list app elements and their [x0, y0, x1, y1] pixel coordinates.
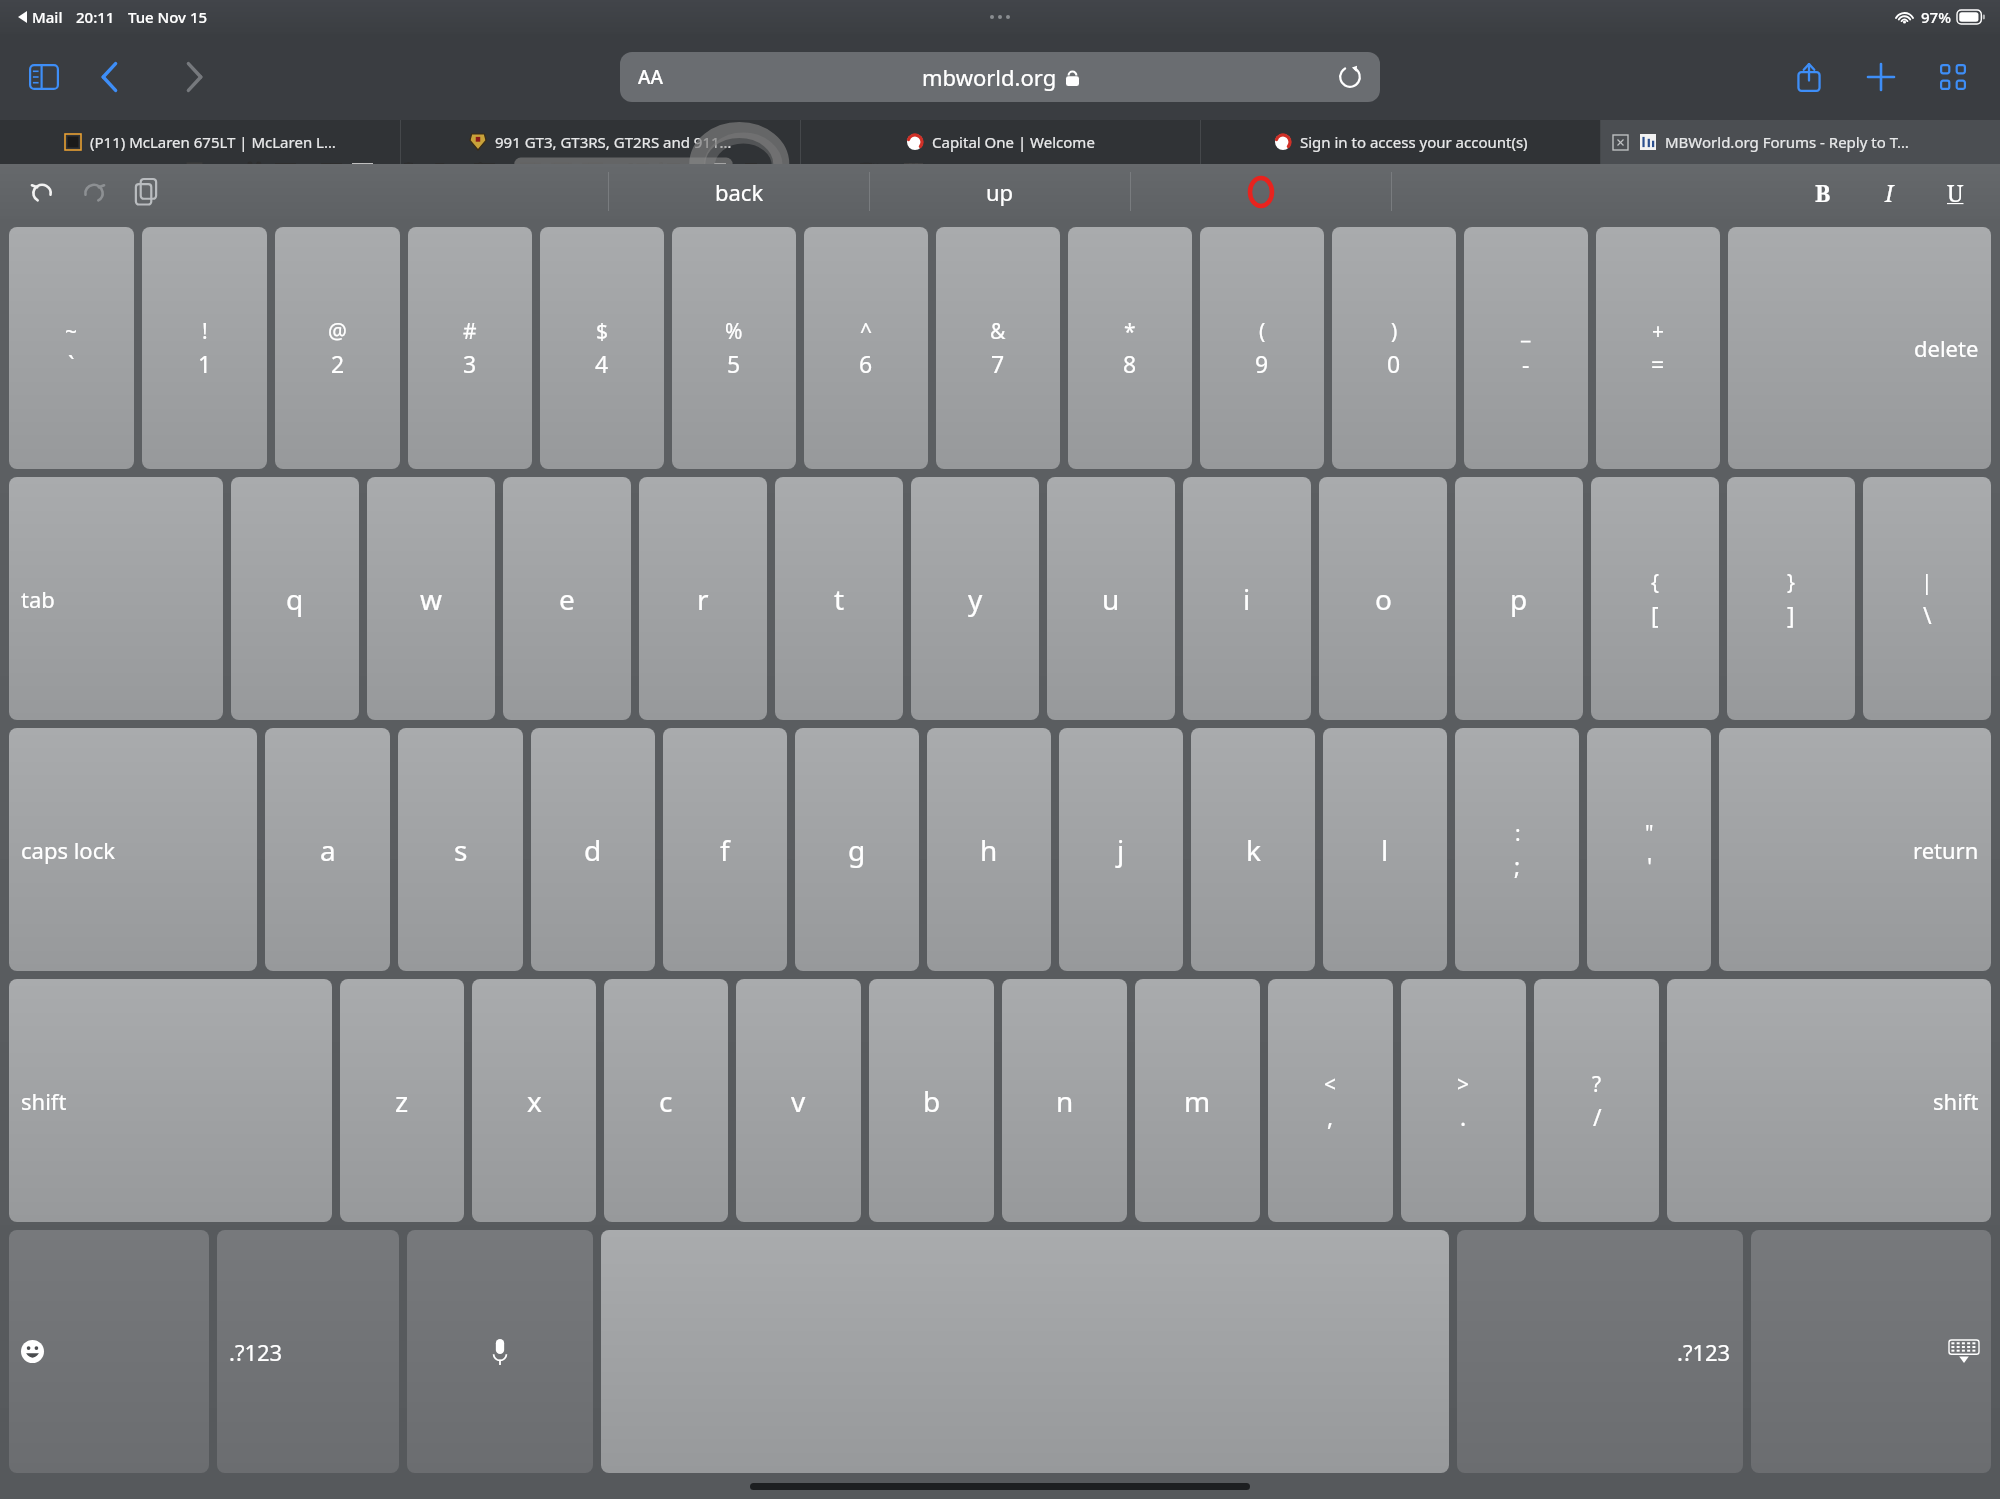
staticText: 5	[727, 348, 741, 379]
button[interactable]: Close tab	[1611, 133, 1629, 151]
button[interactable]: AA	[620, 52, 1380, 102]
button[interactable]: shift	[1667, 979, 1991, 1222]
button[interactable]: v	[736, 979, 861, 1222]
button[interactable]: q	[231, 477, 359, 720]
button[interactable]: }	[1727, 477, 1855, 720]
button[interactable]: y	[911, 477, 1039, 720]
staticText: (	[1259, 317, 1266, 346]
button[interactable]: Sign in to access your account(s)	[1201, 120, 1600, 164]
button[interactable]: |	[1863, 477, 1991, 720]
button[interactable]: c	[604, 979, 728, 1222]
button[interactable]: :	[1455, 728, 1579, 971]
button[interactable]: Show sidebar	[22, 55, 66, 99]
button[interactable]: e	[503, 477, 631, 720]
button[interactable]: tab	[9, 477, 223, 720]
button[interactable]: Marker	[1131, 172, 1391, 211]
button[interactable]: B	[1804, 173, 1842, 211]
staticText: v	[791, 1082, 806, 1120]
staticText: Capital One | Welcome	[932, 132, 1095, 152]
button[interactable]: Dictate	[407, 1230, 593, 1473]
button[interactable]: +	[1596, 227, 1720, 469]
button[interactable]: p	[1455, 477, 1583, 720]
button[interactable]: *	[1068, 227, 1192, 469]
button[interactable]: Redo	[74, 172, 114, 212]
button[interactable]: s	[398, 728, 523, 971]
button[interactable]: Show all tabs	[1930, 54, 1976, 100]
button[interactable]: $	[540, 227, 664, 469]
button[interactable]: caps lock	[9, 728, 257, 971]
button[interactable]: 991 GT3, GT3RS, GT2RS and 911…	[401, 120, 800, 164]
button[interactable]: I	[1870, 173, 1908, 211]
button[interactable]: Forward	[172, 55, 216, 99]
staticText: -	[1522, 348, 1530, 379]
button[interactable]: a	[265, 728, 390, 971]
button[interactable]: %	[672, 227, 796, 469]
button[interactable]: r	[639, 477, 767, 720]
button[interactable]: up	[870, 172, 1130, 211]
button[interactable]: ~	[9, 227, 134, 469]
button[interactable]: "	[1587, 728, 1711, 971]
button[interactable]: z	[340, 979, 464, 1222]
staticText: delete	[1914, 333, 1979, 363]
button[interactable]	[601, 1230, 1449, 1473]
button[interactable]: Close tab	[1601, 120, 2000, 164]
staticText: B	[1815, 177, 1831, 208]
staticText: r	[697, 580, 709, 618]
button[interactable]: U	[1936, 173, 1974, 211]
button[interactable]: b	[869, 979, 994, 1222]
staticText: "	[1645, 819, 1654, 848]
button[interactable]: j	[1059, 728, 1183, 971]
button[interactable]: m	[1135, 979, 1260, 1222]
button[interactable]: New tab	[1858, 54, 1904, 100]
button[interactable]: return	[1719, 728, 1991, 971]
button[interactable]: Back	[88, 55, 132, 99]
button[interactable]: l	[1323, 728, 1447, 971]
button[interactable]: x	[472, 979, 596, 1222]
staticText: :	[1515, 819, 1521, 848]
button[interactable]: Paste	[126, 172, 166, 212]
button[interactable]: h	[927, 728, 1051, 971]
staticText: tab	[21, 584, 55, 614]
button[interactable]: Share	[1786, 54, 1832, 100]
button[interactable]: delete	[1728, 227, 1991, 469]
button[interactable]: .?123	[217, 1230, 399, 1473]
staticText: n	[1056, 1082, 1074, 1120]
button[interactable]: _	[1464, 227, 1588, 469]
button[interactable]: {	[1591, 477, 1719, 720]
button[interactable]: t	[775, 477, 903, 720]
button[interactable]: Capital One | Welcome	[801, 120, 1200, 164]
button[interactable]: ^	[804, 227, 928, 469]
button[interactable]: Reload	[1334, 61, 1366, 93]
button[interactable]: o	[1319, 477, 1447, 720]
button[interactable]: i	[1183, 477, 1311, 720]
button[interactable]: f	[663, 728, 787, 971]
button[interactable]: .?123	[1457, 1230, 1743, 1473]
staticText: {	[1651, 568, 1659, 597]
staticText: caps lock	[21, 835, 115, 865]
button[interactable]: ?	[1534, 979, 1659, 1222]
staticText: *	[1124, 317, 1136, 346]
button[interactable]: (P11) McLaren 675LT | McLaren L…	[0, 120, 400, 164]
staticText: ^	[860, 317, 873, 346]
button[interactable]: Undo	[22, 172, 62, 212]
button[interactable]: Hide keyboard	[1751, 1230, 1991, 1473]
button[interactable]: &	[936, 227, 1060, 469]
button[interactable]: w	[367, 477, 495, 720]
button[interactable]: <	[1268, 979, 1393, 1222]
button[interactable]: @	[275, 227, 400, 469]
button[interactable]: !	[142, 227, 267, 469]
button[interactable]: shift	[9, 979, 332, 1222]
staticText: @	[328, 317, 347, 346]
button[interactable]: >	[1401, 979, 1526, 1222]
button[interactable]: n	[1002, 979, 1127, 1222]
staticText: ,	[1327, 1101, 1334, 1132]
button[interactable]: g	[795, 728, 919, 971]
button[interactable]: (	[1200, 227, 1324, 469]
button[interactable]: Emoji	[9, 1230, 209, 1473]
button[interactable]: k	[1191, 728, 1315, 971]
button[interactable]: u	[1047, 477, 1175, 720]
button[interactable]: #	[408, 227, 532, 469]
button[interactable]: )	[1332, 227, 1456, 469]
button[interactable]: back	[609, 172, 869, 211]
button[interactable]: d	[531, 728, 655, 971]
